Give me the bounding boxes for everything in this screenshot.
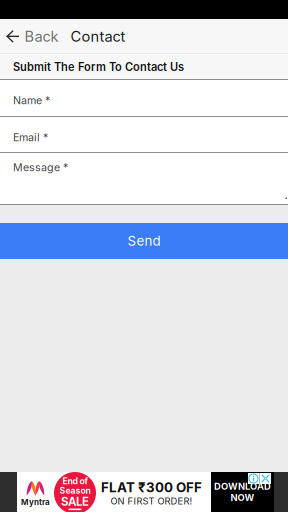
staticText: End of xyxy=(62,476,87,486)
staticText: SALE xyxy=(61,495,89,509)
button[interactable]: Myntra xyxy=(0,472,288,512)
staticText: ON FIRST ORDER! xyxy=(110,495,192,507)
button[interactable]: Close ad xyxy=(260,473,271,484)
button[interactable]: Back xyxy=(0,19,66,54)
staticText: Myntra xyxy=(21,497,50,507)
staticText: FLAT ₹300 OFF xyxy=(101,479,202,495)
staticText: Contact xyxy=(70,28,125,45)
staticText: Message * xyxy=(13,161,68,174)
staticText: DOWNLOAD xyxy=(214,481,271,492)
button[interactable]: Send xyxy=(0,223,288,259)
staticText: Send xyxy=(127,233,160,249)
staticText: Season xyxy=(59,485,90,496)
staticText: Name * xyxy=(13,94,50,107)
button[interactable]: Ad information xyxy=(248,473,259,484)
staticText: Submit The Form To Contact Us xyxy=(13,60,184,74)
staticText: Email * xyxy=(13,131,48,144)
staticText: NOW xyxy=(230,492,254,503)
staticText: Back xyxy=(24,28,58,45)
